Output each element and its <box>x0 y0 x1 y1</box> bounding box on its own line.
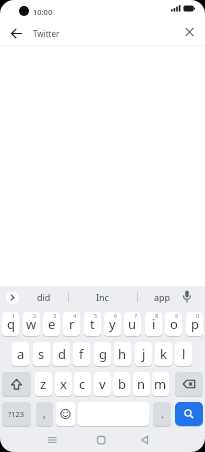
staticText: r <box>69 315 75 333</box>
staticText: u <box>128 315 137 333</box>
staticText: 1 <box>12 312 16 319</box>
staticText: 7 <box>134 312 138 319</box>
button[interactable]: y <box>104 312 121 336</box>
button[interactable] <box>2 372 31 396</box>
button[interactable]: . <box>153 402 171 426</box>
staticText: v <box>99 375 106 393</box>
button[interactable]: f <box>73 342 90 366</box>
staticText: Inc <box>96 291 109 303</box>
staticText: p <box>191 315 199 333</box>
button[interactable]: z <box>35 372 52 396</box>
button[interactable] <box>6 291 19 304</box>
staticText: z <box>40 375 47 393</box>
staticText: m <box>154 375 167 393</box>
button[interactable]: t <box>84 312 101 336</box>
staticText: Twitter <box>33 28 60 39</box>
button[interactable]: Inc <box>86 288 118 305</box>
staticText: 5 <box>94 312 98 319</box>
button[interactable]: d <box>53 342 70 366</box>
button[interactable]: o <box>165 312 182 336</box>
staticText: t <box>90 315 95 333</box>
staticText: ?123 <box>8 409 25 419</box>
button[interactable]: i <box>145 312 162 336</box>
staticText: e <box>48 315 56 333</box>
staticText: j <box>142 345 146 363</box>
staticText: l <box>182 345 186 363</box>
button[interactable]: s <box>33 342 50 366</box>
button[interactable]: e <box>43 312 60 336</box>
staticText: a <box>17 345 25 363</box>
button[interactable] <box>56 402 75 426</box>
staticText: h <box>118 345 127 363</box>
staticText: 2 <box>33 312 37 319</box>
button[interactable]: m <box>152 372 169 396</box>
button[interactable]: r <box>63 312 80 336</box>
staticText: g <box>99 345 107 363</box>
staticText: f <box>79 345 84 363</box>
button[interactable]: did <box>28 288 60 305</box>
button[interactable]: p <box>186 312 203 336</box>
button[interactable]: , <box>36 402 53 426</box>
staticText: o <box>170 315 178 333</box>
button[interactable]: u <box>124 312 141 336</box>
staticText: 8 <box>155 312 159 319</box>
button[interactable]: w <box>23 312 40 336</box>
staticText: did <box>37 291 51 303</box>
button[interactable]: l <box>175 342 192 366</box>
staticText: w <box>26 315 37 333</box>
staticText: 3 <box>53 312 57 319</box>
button[interactable]: v <box>94 372 111 396</box>
staticText: . <box>161 407 164 421</box>
staticText: , <box>43 407 46 421</box>
button[interactable]: app <box>146 288 179 305</box>
staticText: 6 <box>114 312 118 319</box>
staticText: 10:00 <box>33 7 53 17</box>
button[interactable] <box>179 288 195 305</box>
staticText: i <box>152 315 156 333</box>
staticText: n <box>137 375 146 393</box>
button[interactable]: b <box>113 372 130 396</box>
button[interactable] <box>6 23 27 44</box>
button[interactable]: q <box>2 312 19 336</box>
staticText: s <box>38 345 45 363</box>
staticText: app <box>154 291 171 303</box>
staticText: c <box>79 375 86 393</box>
button[interactable]: x <box>55 372 72 396</box>
staticText: y <box>109 315 116 333</box>
staticText: k <box>160 345 167 363</box>
button[interactable]: h <box>114 342 131 366</box>
button[interactable]: ?123 <box>2 402 31 426</box>
staticText: 0 <box>196 312 200 319</box>
staticText: 9 <box>175 312 179 319</box>
button[interactable]: g <box>94 342 111 366</box>
button[interactable] <box>175 402 203 426</box>
staticText: x <box>60 375 67 393</box>
button[interactable]: c <box>74 372 91 396</box>
button[interactable]: j <box>135 342 152 366</box>
staticText: q <box>7 315 15 333</box>
button[interactable] <box>175 372 203 396</box>
button[interactable]: n <box>133 372 150 396</box>
staticText: 4 <box>73 312 77 319</box>
button[interactable]: k <box>155 342 172 366</box>
button[interactable]: a <box>12 342 29 366</box>
staticText: d <box>58 345 66 363</box>
button[interactable] <box>182 25 197 40</box>
staticText: b <box>118 375 126 393</box>
